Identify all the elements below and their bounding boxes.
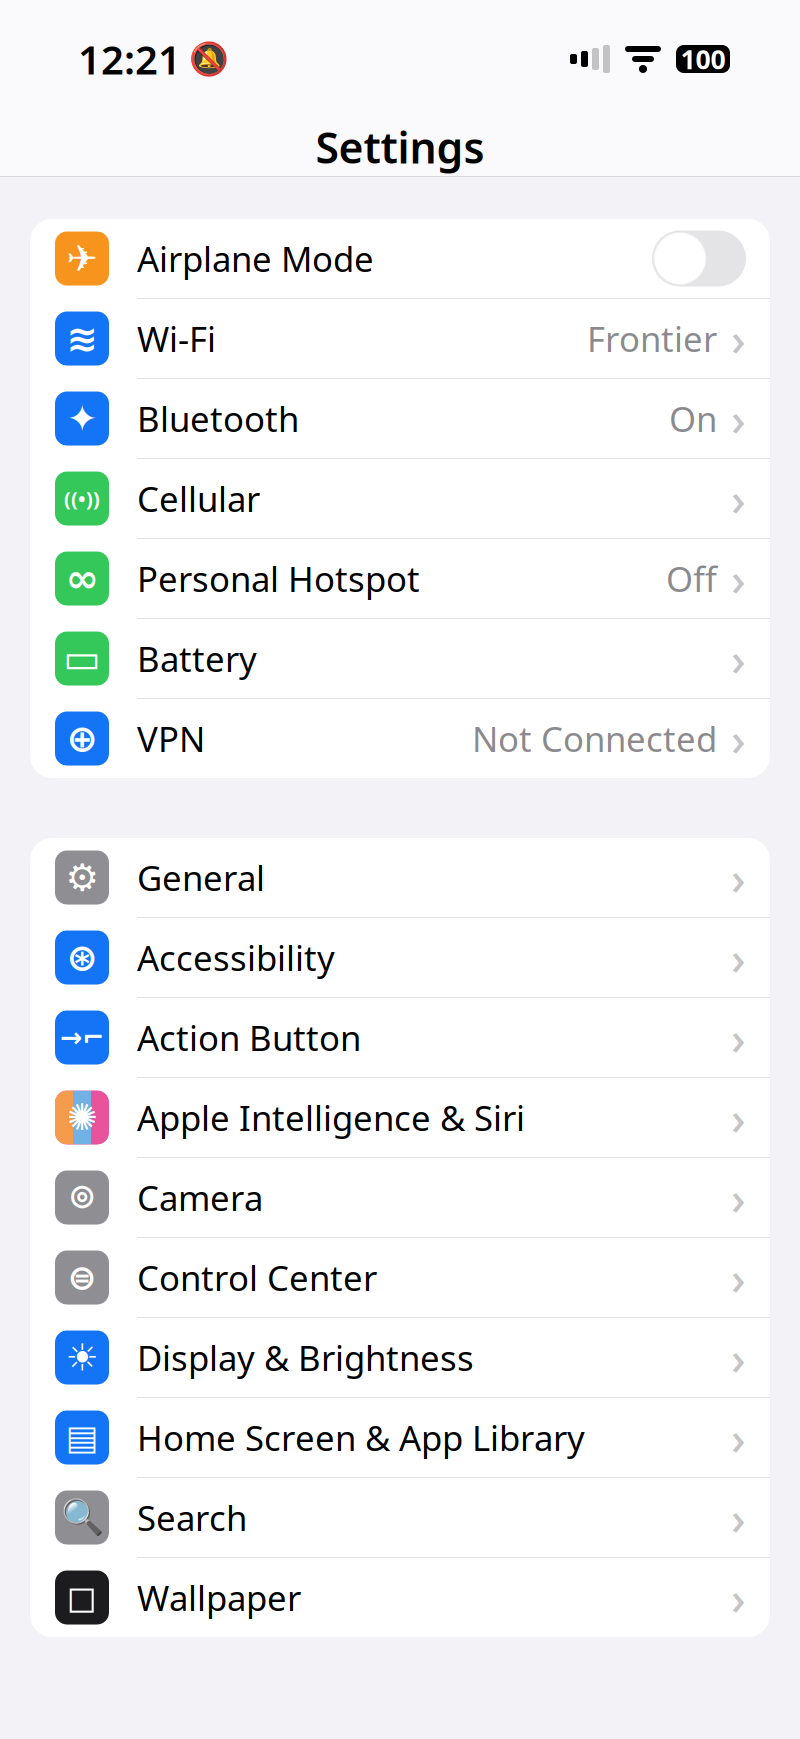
staticText: ›: [731, 1407, 746, 1468]
button[interactable]: ⊛: [30, 918, 770, 997]
staticText: Camera: [137, 1174, 263, 1220]
staticText: Personal Hotspot: [137, 555, 420, 601]
staticText: Home Screen & App Library: [137, 1414, 585, 1460]
staticText: 12:21: [78, 32, 181, 85]
staticText: ⊕: [66, 717, 97, 760]
staticText: ›: [731, 468, 746, 529]
staticText: ›: [731, 1567, 746, 1628]
staticText: ≋: [66, 317, 97, 360]
staticText: ✺: [66, 1096, 97, 1139]
staticText: Frontier: [587, 315, 717, 361]
staticText: Off: [666, 555, 717, 601]
staticText: ⊛: [66, 936, 97, 979]
staticText: General: [137, 854, 265, 900]
button[interactable]: ((•)): [30, 459, 770, 538]
staticText: →⌐: [60, 1022, 104, 1053]
staticText: ›: [731, 708, 746, 769]
staticText: ›: [731, 927, 746, 988]
button[interactable]: ✺: [30, 1078, 770, 1157]
staticText: ›: [731, 1087, 746, 1148]
staticText: 🔕: [189, 41, 229, 77]
staticText: ▤: [65, 1418, 98, 1457]
staticText: ›: [731, 308, 746, 369]
staticText: VPN: [137, 715, 205, 761]
button[interactable]: ▭: [30, 619, 770, 698]
staticText: 100: [680, 41, 725, 77]
staticText: ✦: [66, 397, 97, 440]
staticText: Apple Intelligence & Siri: [137, 1094, 525, 1140]
button[interactable]: 🔍: [30, 1478, 770, 1557]
staticText: ›: [731, 388, 746, 449]
button[interactable]: ✈: [30, 219, 770, 298]
staticText: ›: [731, 628, 746, 689]
button[interactable]: ⌾: [30, 1158, 770, 1237]
staticText: ⊜: [67, 1258, 96, 1297]
staticText: Action Button: [137, 1014, 361, 1060]
staticText: Cellular: [137, 475, 260, 521]
staticText: Wi-Fi: [137, 315, 216, 361]
staticText: ◻: [66, 1576, 97, 1619]
staticText: On: [669, 395, 717, 441]
staticText: ›: [731, 1247, 746, 1308]
staticText: ✈: [66, 237, 97, 280]
staticText: ›: [731, 1327, 746, 1388]
staticText: ☀: [65, 1336, 98, 1379]
staticText: Display & Brightness: [137, 1334, 474, 1380]
staticText: ▭: [63, 636, 101, 681]
button[interactable]: ◻: [30, 1558, 770, 1637]
staticText: Not Connected: [472, 715, 717, 761]
button[interactable]: ▤: [30, 1398, 770, 1477]
staticText: ›: [731, 847, 746, 908]
button[interactable]: ☀: [30, 1318, 770, 1397]
button[interactable]: ✦: [30, 379, 770, 458]
button[interactable]: ⚙: [30, 838, 770, 917]
staticText: Accessibility: [137, 934, 335, 980]
staticText: Search: [137, 1494, 247, 1540]
staticText: ›: [731, 548, 746, 609]
button[interactable]: ⊜: [30, 1238, 770, 1317]
button[interactable]: ∞: [30, 539, 770, 618]
button[interactable]: ≋: [30, 299, 770, 378]
staticText: Airplane Mode: [137, 235, 374, 281]
staticText: Control Center: [137, 1254, 377, 1300]
staticText: Bluetooth: [137, 395, 299, 441]
staticText: 🔍: [60, 1498, 103, 1537]
staticText: ›: [731, 1487, 746, 1548]
staticText: Settings: [315, 119, 484, 175]
staticText: Battery: [137, 635, 257, 681]
staticText: ›: [731, 1007, 746, 1068]
button[interactable]: →⌐: [30, 998, 770, 1077]
staticText: ⌾: [71, 1176, 93, 1219]
button[interactable]: ⊕: [30, 699, 770, 778]
staticText: ⚙: [65, 856, 98, 899]
staticText: ((•)): [64, 485, 100, 512]
staticText: ∞: [65, 556, 98, 601]
staticText: ›: [731, 1167, 746, 1228]
staticText: Wallpaper: [137, 1574, 301, 1620]
